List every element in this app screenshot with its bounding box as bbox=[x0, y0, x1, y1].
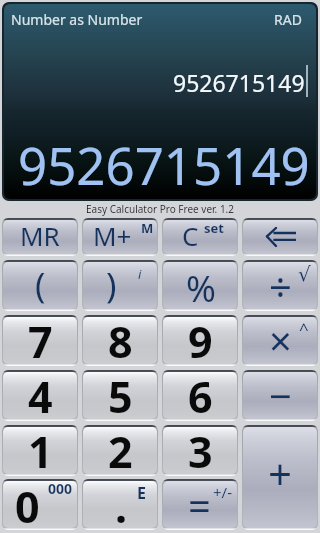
staticText: +/- bbox=[213, 482, 232, 502]
staticText: E bbox=[137, 482, 146, 504]
staticText: 7 bbox=[28, 317, 53, 359]
staticText: MR bbox=[20, 220, 60, 252]
button[interactable]: ) bbox=[83, 262, 157, 309]
staticText: = bbox=[188, 481, 211, 525]
staticText: √ bbox=[298, 262, 311, 285]
staticText: M bbox=[141, 220, 154, 237]
button[interactable]: 7 bbox=[3, 317, 77, 364]
staticText: 9 bbox=[188, 317, 213, 359]
staticText: . bbox=[115, 481, 128, 524]
button[interactable]: 6 bbox=[163, 372, 237, 419]
staticText: ÷ bbox=[269, 262, 292, 306]
staticText: 9526715149 bbox=[18, 130, 310, 199]
staticText: − bbox=[269, 372, 292, 415]
button[interactable]: ÷ bbox=[243, 262, 317, 309]
staticText: set bbox=[204, 220, 224, 237]
button[interactable]: 3 bbox=[163, 427, 237, 474]
staticText: M+ bbox=[93, 220, 132, 252]
button[interactable]: ( bbox=[3, 262, 77, 309]
button[interactable]: 4 bbox=[3, 372, 77, 419]
button[interactable]: % bbox=[163, 262, 237, 309]
button[interactable]: MR bbox=[3, 220, 77, 254]
button[interactable]: × bbox=[243, 317, 317, 364]
button[interactable]: 1 bbox=[3, 427, 77, 474]
button[interactable]: + bbox=[243, 427, 317, 528]
staticText: ) bbox=[106, 262, 117, 308]
staticText: 8 bbox=[108, 317, 133, 359]
button[interactable]: C bbox=[163, 220, 237, 254]
button[interactable]: − bbox=[243, 372, 317, 419]
button[interactable]: . bbox=[83, 481, 157, 528]
staticText: 9526715149 bbox=[173, 67, 305, 98]
staticText: 3 bbox=[188, 427, 213, 469]
staticText: × bbox=[269, 317, 292, 360]
staticText: 1 bbox=[28, 427, 53, 469]
staticText: i bbox=[138, 265, 142, 283]
staticText: 0 bbox=[15, 481, 40, 524]
staticText: Easy Calculator Pro Free ver. 1.2 bbox=[86, 202, 235, 216]
staticText: 000 bbox=[48, 481, 73, 498]
button[interactable]: 9 bbox=[163, 317, 237, 364]
staticText: % bbox=[186, 264, 216, 309]
staticText: 2 bbox=[108, 427, 133, 469]
staticText: 4 bbox=[28, 372, 53, 414]
staticText: ( bbox=[35, 262, 46, 308]
button[interactable]: = bbox=[163, 481, 237, 528]
button[interactable]: M+ bbox=[83, 220, 157, 254]
staticText: ^ bbox=[299, 317, 309, 340]
staticText: + bbox=[268, 445, 293, 502]
staticText: RAD bbox=[274, 10, 302, 29]
staticText: 6 bbox=[188, 372, 213, 414]
button[interactable]: Backspace bbox=[243, 220, 317, 254]
staticText: C bbox=[182, 220, 199, 252]
staticText: Number as Number bbox=[11, 10, 143, 29]
staticText: 5 bbox=[108, 372, 133, 414]
button[interactable]: 8 bbox=[83, 317, 157, 364]
button[interactable]: 2 bbox=[83, 427, 157, 474]
button[interactable]: 5 bbox=[83, 372, 157, 419]
button[interactable]: 0 bbox=[3, 481, 77, 528]
